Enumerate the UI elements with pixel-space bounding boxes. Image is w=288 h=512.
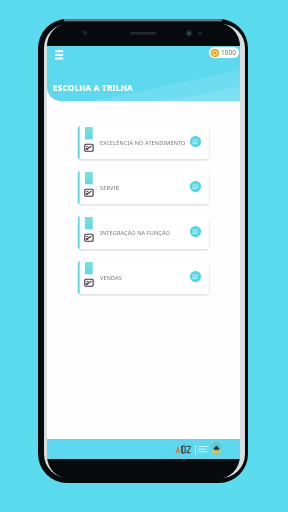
- button[interactable]: 1000: [209, 47, 239, 58]
- button[interactable]: EXCELÊNCIA NO ATENDIMENTO: [78, 126, 209, 159]
- button[interactable]: Menu: [53, 47, 65, 61]
- staticText: VENDAS: [100, 274, 122, 281]
- button[interactable]: SERVIR: [78, 171, 209, 204]
- staticText: INTEGRAÇÃO NA FUNÇÃO: [100, 229, 170, 236]
- button[interactable]: Abrir trilha: [190, 181, 201, 192]
- button[interactable]: Abrir trilha: [190, 271, 201, 282]
- button[interactable]: Abrir trilha: [190, 226, 201, 237]
- button[interactable]: INTEGRAÇÃO NA FUNÇÃO: [78, 216, 209, 249]
- staticText: ESCOLHA A TRILHA: [53, 82, 133, 93]
- button[interactable]: Abrir trilha: [190, 136, 201, 147]
- button[interactable]: ABZ: [175, 444, 222, 455]
- staticText: EXCELÊNCIA NO ATENDIMENTO: [100, 139, 186, 146]
- button[interactable]: VENDAS: [78, 261, 209, 294]
- staticText: SERVIR: [100, 184, 119, 191]
- staticText: 1000: [221, 48, 236, 57]
